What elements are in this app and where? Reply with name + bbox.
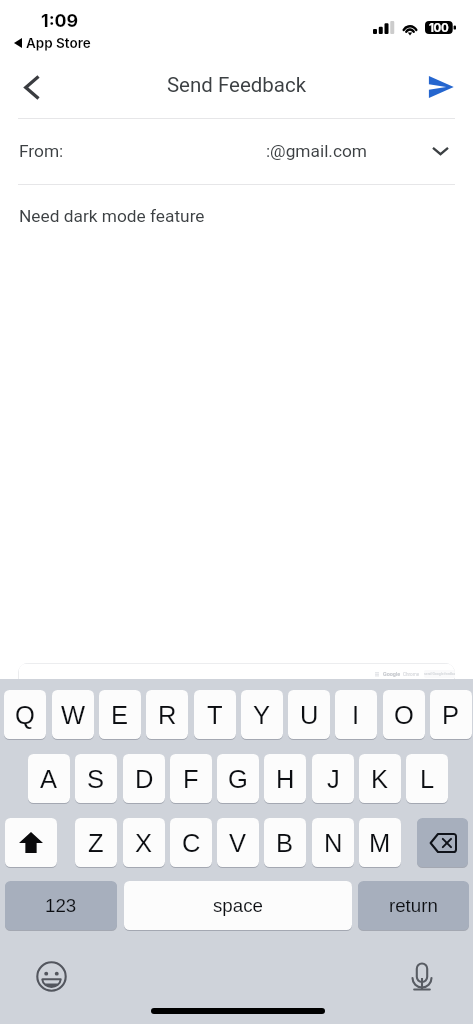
button[interactable]: V bbox=[217, 818, 259, 867]
button[interactable]: E bbox=[99, 690, 141, 739]
button[interactable]: return bbox=[358, 881, 469, 930]
staticText: T bbox=[207, 701, 223, 729]
button[interactable]: A bbox=[28, 754, 70, 803]
button[interactable]: N bbox=[312, 818, 354, 867]
button[interactable]: 123 bbox=[5, 881, 117, 930]
staticText: R bbox=[158, 701, 177, 729]
button[interactable]: X bbox=[123, 818, 165, 867]
staticText: G bbox=[228, 765, 248, 793]
staticText: U bbox=[300, 701, 319, 729]
staticText: Need dark mode feature bbox=[19, 206, 205, 226]
staticText: From: bbox=[19, 141, 64, 161]
staticText: V bbox=[229, 829, 247, 857]
button[interactable]: H bbox=[264, 754, 306, 803]
button[interactable]: P bbox=[430, 690, 472, 739]
staticText: L bbox=[420, 765, 435, 793]
button[interactable]: Q bbox=[4, 690, 46, 739]
staticText: space bbox=[213, 895, 263, 916]
staticText: 123 bbox=[45, 895, 77, 916]
button[interactable]: R bbox=[146, 690, 188, 739]
button[interactable]: D bbox=[123, 754, 165, 803]
staticText: A bbox=[40, 765, 58, 793]
button[interactable]: Backspace bbox=[417, 818, 468, 867]
button[interactable]: G bbox=[217, 754, 259, 803]
button[interactable]: O bbox=[383, 690, 425, 739]
staticText: J bbox=[327, 765, 340, 793]
staticText: S bbox=[87, 765, 105, 793]
button[interactable]: Send bbox=[419, 66, 463, 108]
staticText: F bbox=[183, 765, 199, 793]
staticText: B bbox=[276, 829, 294, 857]
button[interactable]: F bbox=[170, 754, 212, 803]
staticText: N bbox=[324, 829, 343, 857]
staticText: Chrome bbox=[403, 672, 420, 677]
staticText: Send Feedback bbox=[0, 73, 473, 97]
button[interactable]: Z bbox=[75, 818, 117, 867]
button[interactable]: U bbox=[288, 690, 330, 739]
staticText: I bbox=[352, 701, 360, 729]
staticText: App Store bbox=[26, 35, 91, 51]
staticText: Google bbox=[383, 671, 401, 677]
button[interactable]: T bbox=[194, 690, 236, 739]
button[interactable]: B bbox=[264, 818, 306, 867]
staticText: C bbox=[182, 829, 201, 857]
staticText: send Google feedback bbox=[424, 672, 455, 676]
staticText: X bbox=[135, 829, 153, 857]
staticText: D bbox=[135, 765, 154, 793]
staticText: Y bbox=[253, 701, 271, 729]
staticText: 100 bbox=[429, 21, 449, 34]
staticText: 1:09 bbox=[41, 10, 79, 32]
button[interactable]: Dictation bbox=[404, 959, 439, 994]
button[interactable]: Shift bbox=[5, 818, 57, 867]
button[interactable]: Emoji keyboard bbox=[34, 959, 69, 994]
button[interactable]: space bbox=[124, 881, 352, 930]
button[interactable]: From: bbox=[0, 119, 473, 184]
staticText: K bbox=[371, 765, 389, 793]
staticText: Z bbox=[88, 829, 104, 857]
staticText: Q bbox=[15, 701, 35, 729]
staticText: P bbox=[442, 701, 460, 729]
button[interactable]: I bbox=[335, 690, 377, 739]
button[interactable]: S bbox=[75, 754, 117, 803]
button[interactable]: Expand recipients bbox=[419, 130, 461, 172]
staticText: :@gmail.com bbox=[150, 141, 367, 161]
button[interactable]: W bbox=[52, 690, 94, 739]
staticText: E bbox=[111, 701, 129, 729]
button[interactable]: J bbox=[312, 754, 354, 803]
button[interactable]: M bbox=[359, 818, 401, 867]
button[interactable]: C bbox=[170, 818, 212, 867]
button[interactable]: K bbox=[359, 754, 401, 803]
button[interactable]: Need dark mode feature bbox=[0, 185, 473, 645]
staticText: M bbox=[369, 829, 391, 857]
button[interactable]: Back bbox=[10, 67, 54, 107]
staticText: W bbox=[61, 701, 86, 729]
staticText: O bbox=[394, 701, 414, 729]
button[interactable]: L bbox=[406, 754, 448, 803]
staticText: return bbox=[389, 895, 438, 916]
button[interactable]: Y bbox=[241, 690, 283, 739]
staticText: H bbox=[276, 765, 295, 793]
